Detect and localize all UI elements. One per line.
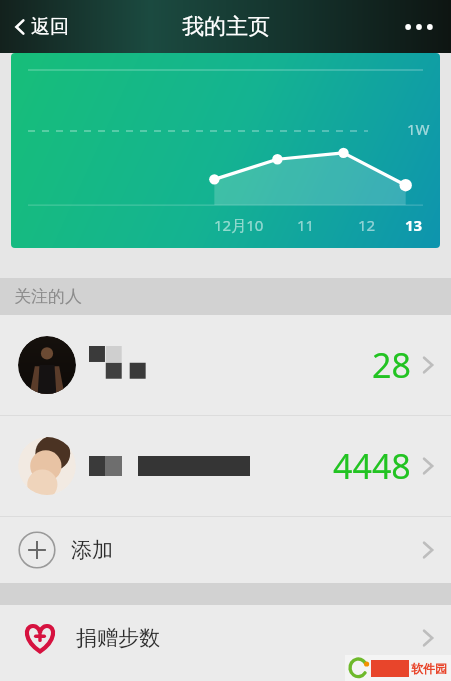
button[interactable]: 1W <box>11 53 440 248</box>
staticText: 软件园 <box>411 661 447 676</box>
other: Open <box>421 352 435 378</box>
staticText: 4448 <box>333 443 411 489</box>
staticText: 28 <box>372 342 411 388</box>
other: Open <box>421 453 435 479</box>
staticText: 返回 <box>31 15 69 39</box>
staticText: 1W <box>407 119 430 139</box>
staticText: 11 <box>297 215 315 235</box>
button[interactable]: 返回 <box>8 9 75 45</box>
staticText: 12 <box>358 215 376 235</box>
button[interactable]: 28 <box>0 315 451 415</box>
button[interactable]: More options <box>397 7 441 47</box>
staticText: 添加 <box>71 537 113 563</box>
other: Open <box>421 625 435 651</box>
staticText: 关注的人 <box>14 286 82 307</box>
staticText: 12月10 <box>214 215 264 235</box>
staticText: 13 <box>405 215 423 235</box>
other: Open <box>421 537 435 563</box>
staticText: 我的主页 <box>182 13 270 41</box>
button[interactable]: 捐赠步数 <box>0 605 451 671</box>
staticText: 捐赠步数 <box>76 625 160 651</box>
button[interactable]: 4448 <box>0 416 451 516</box>
button[interactable]: 添加 <box>0 517 451 583</box>
